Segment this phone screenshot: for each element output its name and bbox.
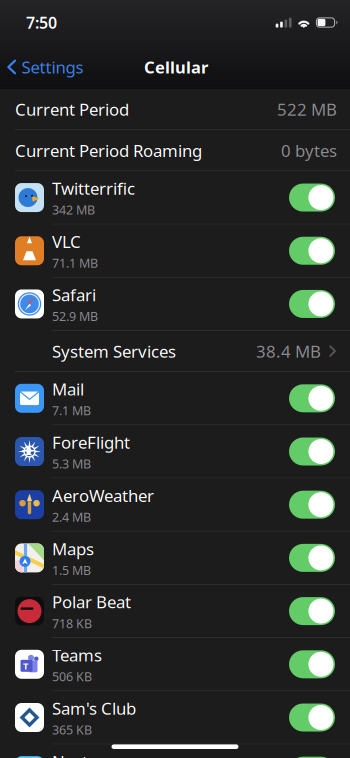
staticText: 506 KB [52,668,92,685]
staticText: Mail [52,378,84,400]
staticText: Twitterrific [52,177,135,200]
button[interactable]: T [0,638,350,690]
staticText: Maps [52,537,94,560]
button[interactable]: ForeFlight [0,425,350,478]
staticText: Polar Beat [52,590,131,613]
staticText: AeroWeather [52,484,154,507]
staticText: 52.9 MB [52,308,98,325]
button[interactable]: Settings [0,48,83,86]
button[interactable]: Twitterrific [0,171,350,224]
button[interactable]: AeroWeather [0,478,350,531]
staticText: 342 MB [52,201,95,218]
staticText: 7.1 MB [52,402,91,419]
staticText: Teams [52,644,102,666]
staticText: 38.4 MB [256,340,321,363]
staticText: Cellular [144,56,208,78]
staticText: 718 KB [52,615,92,632]
staticText: Current Period [15,98,129,121]
staticText: 0 bytes [281,139,337,162]
button[interactable]: Sam's Club [0,691,350,744]
staticText: 1.5 MB [52,562,91,579]
button[interactable]: Maps [0,532,350,584]
staticText: Current Period Roaming [15,139,202,162]
staticText: T [23,659,28,672]
staticText: Safari [52,283,96,306]
button[interactable]: Mail [0,372,350,424]
staticText: 71.1 MB [52,254,98,271]
staticText: Nest [52,750,88,758]
staticText: Settings [21,56,83,78]
button[interactable]: Current Period Roaming [0,130,350,171]
staticText: VLC [52,230,81,253]
staticText: 2.4 MB [52,508,91,525]
staticText: 522 MB [277,98,337,121]
button[interactable]: Current Period [0,89,350,129]
staticText: System Services [52,340,176,363]
button[interactable]: VLC [0,224,350,277]
button[interactable]: Nest [0,744,350,758]
staticText: ForeFlight [52,431,130,454]
staticText: 7:50 [26,12,57,33]
staticText: 365 KB [52,721,92,738]
staticText: Sam's Club [52,697,136,720]
button[interactable]: System Services [0,331,350,371]
button[interactable]: Safari [0,278,350,330]
staticText: 5.3 MB [52,455,91,472]
button[interactable]: Polar Beat [0,585,350,637]
